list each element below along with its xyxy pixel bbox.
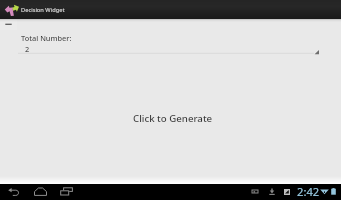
staticText: Decision Widget — [21, 6, 65, 14]
button[interactable]: Click to Generate — [133, 112, 213, 125]
button[interactable]: Decision Widget — [0, 0, 341, 19]
staticText: Total Number: — [21, 33, 72, 43]
button[interactable]: Recent apps — [60, 187, 73, 196]
button[interactable]: Home — [34, 187, 47, 196]
staticText: 2 — [25, 44, 30, 54]
staticText: 2:42 — [297, 184, 320, 199]
staticText: Click to Generate — [133, 112, 213, 125]
button[interactable]: Back — [8, 188, 20, 196]
